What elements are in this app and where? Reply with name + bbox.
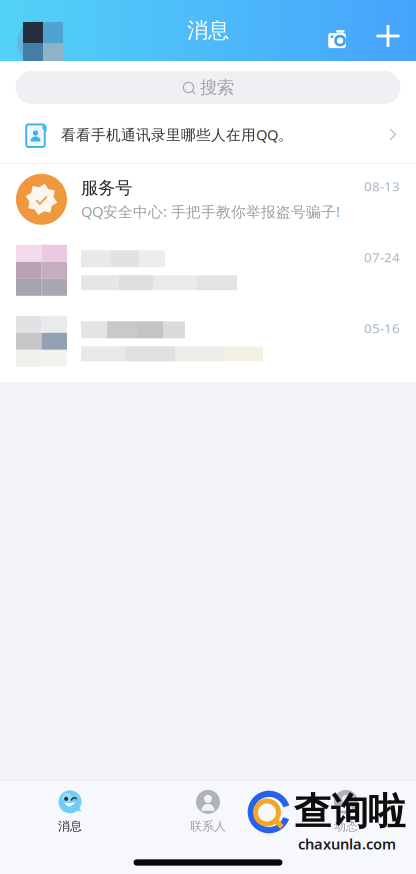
staticText: 联系人 <box>190 819 226 833</box>
staticText: 查询啦 <box>294 789 405 835</box>
staticText: 07-24 <box>364 248 400 266</box>
button[interactable]: 消息 <box>1 781 139 833</box>
button[interactable]: 05-16 <box>0 306 416 377</box>
button[interactable]: Profile <box>8 14 64 62</box>
button[interactable]: 搜索 <box>0 61 416 106</box>
staticText: 看看手机通讯录里哪些人在用QQ。 <box>61 125 293 144</box>
staticText: 服务号 <box>81 177 132 199</box>
staticText: chaxunla.com <box>298 834 396 853</box>
staticText: 搜索 <box>200 77 234 98</box>
staticText: QQ安全中心: 手把手教你举报盗号骗子! <box>81 202 340 221</box>
button[interactable]: Camera <box>317 17 357 57</box>
button[interactable]: Add <box>366 14 410 58</box>
button[interactable]: 动态 <box>277 781 415 833</box>
button[interactable]: 看看手机通讯录里哪些人在用QQ。 <box>0 106 416 163</box>
button[interactable]: 联系人 <box>139 781 277 833</box>
staticText: 05-16 <box>364 319 400 337</box>
staticText: 动态 <box>334 819 358 833</box>
staticText: 08-13 <box>364 177 400 195</box>
staticText: 消息 <box>58 819 82 833</box>
button[interactable]: 07-24 <box>0 235 416 306</box>
staticText: 消息 <box>187 17 229 44</box>
button[interactable]: 服务号 <box>0 164 416 235</box>
